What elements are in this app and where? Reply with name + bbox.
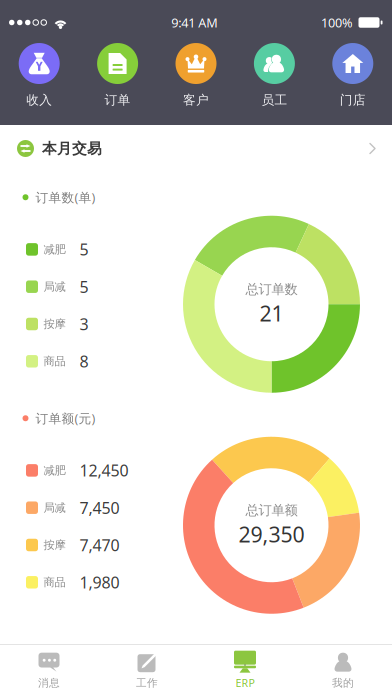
staticText: 本月交易	[42, 139, 102, 158]
staticText: ERP	[235, 676, 254, 690]
button[interactable]: 客户	[157, 35, 235, 115]
staticText: 工作	[136, 676, 158, 690]
button[interactable]: 工作	[98, 645, 196, 696]
button[interactable]: 收入	[0, 35, 78, 115]
staticText: 100%	[321, 14, 353, 31]
staticText: 局减	[43, 501, 65, 515]
staticText: 21	[259, 299, 283, 328]
staticText: 12,450	[79, 459, 128, 481]
button[interactable]: 员工	[235, 35, 314, 115]
staticText: 1,980	[79, 571, 119, 593]
staticText: 总订单额	[245, 502, 297, 519]
staticText: 订单	[105, 92, 131, 108]
staticText: 减肥	[43, 242, 65, 257]
staticText: 按摩	[43, 538, 65, 552]
staticText: 局减	[43, 280, 65, 294]
staticText: 7,470	[79, 534, 119, 556]
staticText: 订单额(元)	[35, 410, 95, 427]
staticText: 5	[79, 276, 88, 298]
staticText: 消息	[38, 676, 60, 690]
button[interactable]: 我的	[294, 645, 392, 696]
staticText: 商品	[43, 354, 65, 368]
staticText: 员工	[261, 92, 287, 108]
staticText: 收入	[26, 92, 52, 108]
staticText: 客户	[183, 92, 209, 108]
button[interactable]: 本月交易	[0, 125, 392, 172]
staticText: 7,450	[79, 497, 119, 519]
button[interactable]: ERP	[196, 645, 294, 696]
staticText: 总订单数	[245, 281, 297, 298]
staticText: 按摩	[43, 317, 65, 331]
staticText: 5	[79, 238, 88, 260]
staticText: 减肥	[43, 463, 65, 478]
staticText: 门店	[340, 92, 366, 108]
staticText: 3	[79, 313, 88, 335]
button[interactable]: 消息	[0, 645, 98, 696]
staticText: 我的	[332, 676, 354, 690]
staticText: 29,350	[238, 520, 304, 549]
button[interactable]: 订单	[78, 35, 157, 115]
staticText: 9:41 AM	[171, 14, 217, 31]
staticText: 商品	[43, 575, 65, 589]
staticText: 8	[79, 350, 88, 372]
staticText: 订单数(单)	[35, 189, 95, 206]
button[interactable]: 门店	[314, 35, 392, 115]
